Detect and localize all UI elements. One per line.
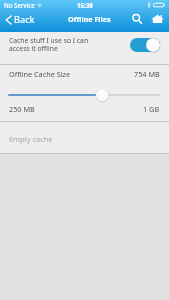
staticText: 754 MB [134, 69, 160, 79]
staticText: Back [14, 13, 35, 26]
button[interactable]: Back [0, 11, 39, 28]
staticText: Cache stuff I use so I can access it off… [9, 36, 89, 53]
staticText: No Service [4, 1, 35, 9]
staticText: 250 MB [9, 104, 35, 114]
button[interactable]: Search [130, 12, 144, 26]
button[interactable]: Offline cache toggle [130, 38, 160, 52]
staticText: Offline Files [68, 14, 111, 24]
button[interactable]: Home [150, 12, 164, 26]
staticText: 1 GB [143, 104, 160, 114]
staticText: Offline Cache Size [9, 69, 71, 79]
button[interactable]: Empty cache [0, 122, 169, 153]
button[interactable]: Cache stuff I use so I can access it off… [0, 32, 169, 64]
staticText: Empty cache [9, 134, 53, 144]
staticText: 15:36 [77, 1, 93, 9]
